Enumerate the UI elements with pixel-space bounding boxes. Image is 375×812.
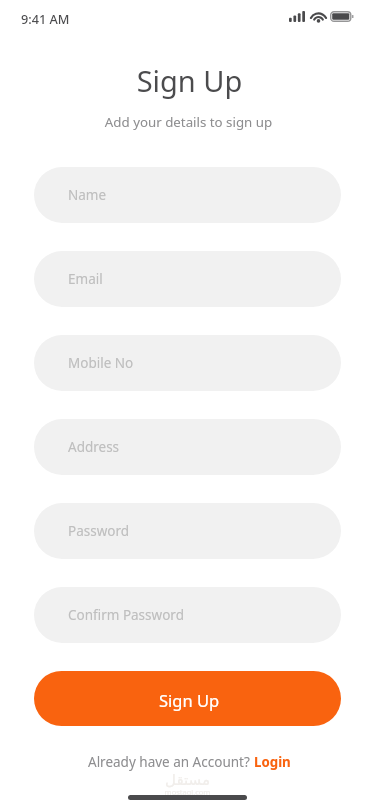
button[interactable]: Confirm Password — [34, 587, 341, 643]
button[interactable]: Email — [34, 251, 341, 307]
staticText: Confirm Password — [68, 606, 184, 624]
staticText: Password — [68, 522, 130, 540]
button[interactable]: Sign Up — [34, 671, 341, 726]
staticText: Email — [68, 270, 103, 288]
staticText: Add your details to sign up — [1, 113, 375, 131]
staticText: Sign Up — [2, 61, 375, 100]
staticText: Address — [68, 438, 120, 456]
button[interactable]: Login — [254, 753, 291, 771]
button[interactable]: Address — [34, 419, 341, 475]
button[interactable]: Password — [34, 503, 341, 559]
staticText: mostaql.com — [0, 787, 375, 797]
other: Wi-Fi — [311, 11, 326, 22]
other: Cellular signal — [289, 11, 305, 22]
staticText: 9:41 AM — [21, 10, 70, 27]
other: Battery full — [330, 11, 354, 22]
staticText: Name — [68, 186, 107, 204]
staticText: Sign Up — [159, 689, 220, 711]
staticText: Already have an Account? — [88, 753, 254, 771]
button[interactable]: Mobile No — [34, 335, 341, 391]
staticText: Mobile No — [68, 354, 134, 372]
button[interactable]: Name — [34, 167, 341, 223]
